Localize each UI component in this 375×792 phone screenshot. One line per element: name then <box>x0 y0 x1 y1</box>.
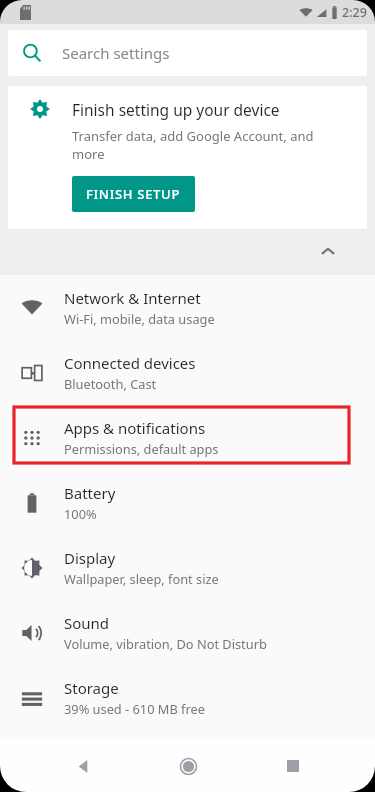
button[interactable]: Display <box>0 535 375 600</box>
staticText: Network & Internet <box>64 288 201 308</box>
staticText: Search settings <box>62 43 170 63</box>
staticText: 39% used - 610 MB free <box>64 700 205 717</box>
button[interactable]: Sound <box>0 600 375 665</box>
staticText: Apps & notifications <box>64 418 206 438</box>
button[interactable]: Network & Internet <box>0 275 375 340</box>
button[interactable]: Storage <box>0 665 375 730</box>
staticText: 100% <box>64 505 97 522</box>
staticText: Wallpaper, sleep, font size <box>64 570 219 587</box>
button[interactable]: Apps & notifications <box>0 405 375 470</box>
staticText: Sound <box>64 613 110 633</box>
staticText: Connected devices <box>64 353 196 373</box>
staticText: Volume, vibration, Do Not Disturb <box>64 635 267 652</box>
button[interactable]: Search settings <box>8 30 367 76</box>
button[interactable]: Recent apps <box>269 742 317 790</box>
button[interactable]: Battery <box>0 470 375 535</box>
staticText: Transfer data, add Google Account, and m… <box>72 127 343 163</box>
staticText: FINISH SETUP <box>86 185 181 203</box>
button[interactable]: FINISH SETUP <box>72 176 195 212</box>
button[interactable]: Home <box>164 742 212 790</box>
button[interactable]: Connected devices <box>0 340 375 405</box>
staticText: Storage <box>64 678 119 698</box>
staticText: Display <box>64 548 116 568</box>
staticText: Bluetooth, Cast <box>64 375 157 392</box>
staticText: Finish setting up your device <box>72 99 280 120</box>
button[interactable]: Back <box>58 742 106 790</box>
button[interactable]: Collapse suggestions <box>0 229 375 275</box>
staticText: Permissions, default apps <box>64 440 219 457</box>
staticText: Wi-Fi, mobile, data usage <box>64 310 215 327</box>
staticText: 2:29 <box>342 4 367 21</box>
staticText: Battery <box>64 483 116 503</box>
